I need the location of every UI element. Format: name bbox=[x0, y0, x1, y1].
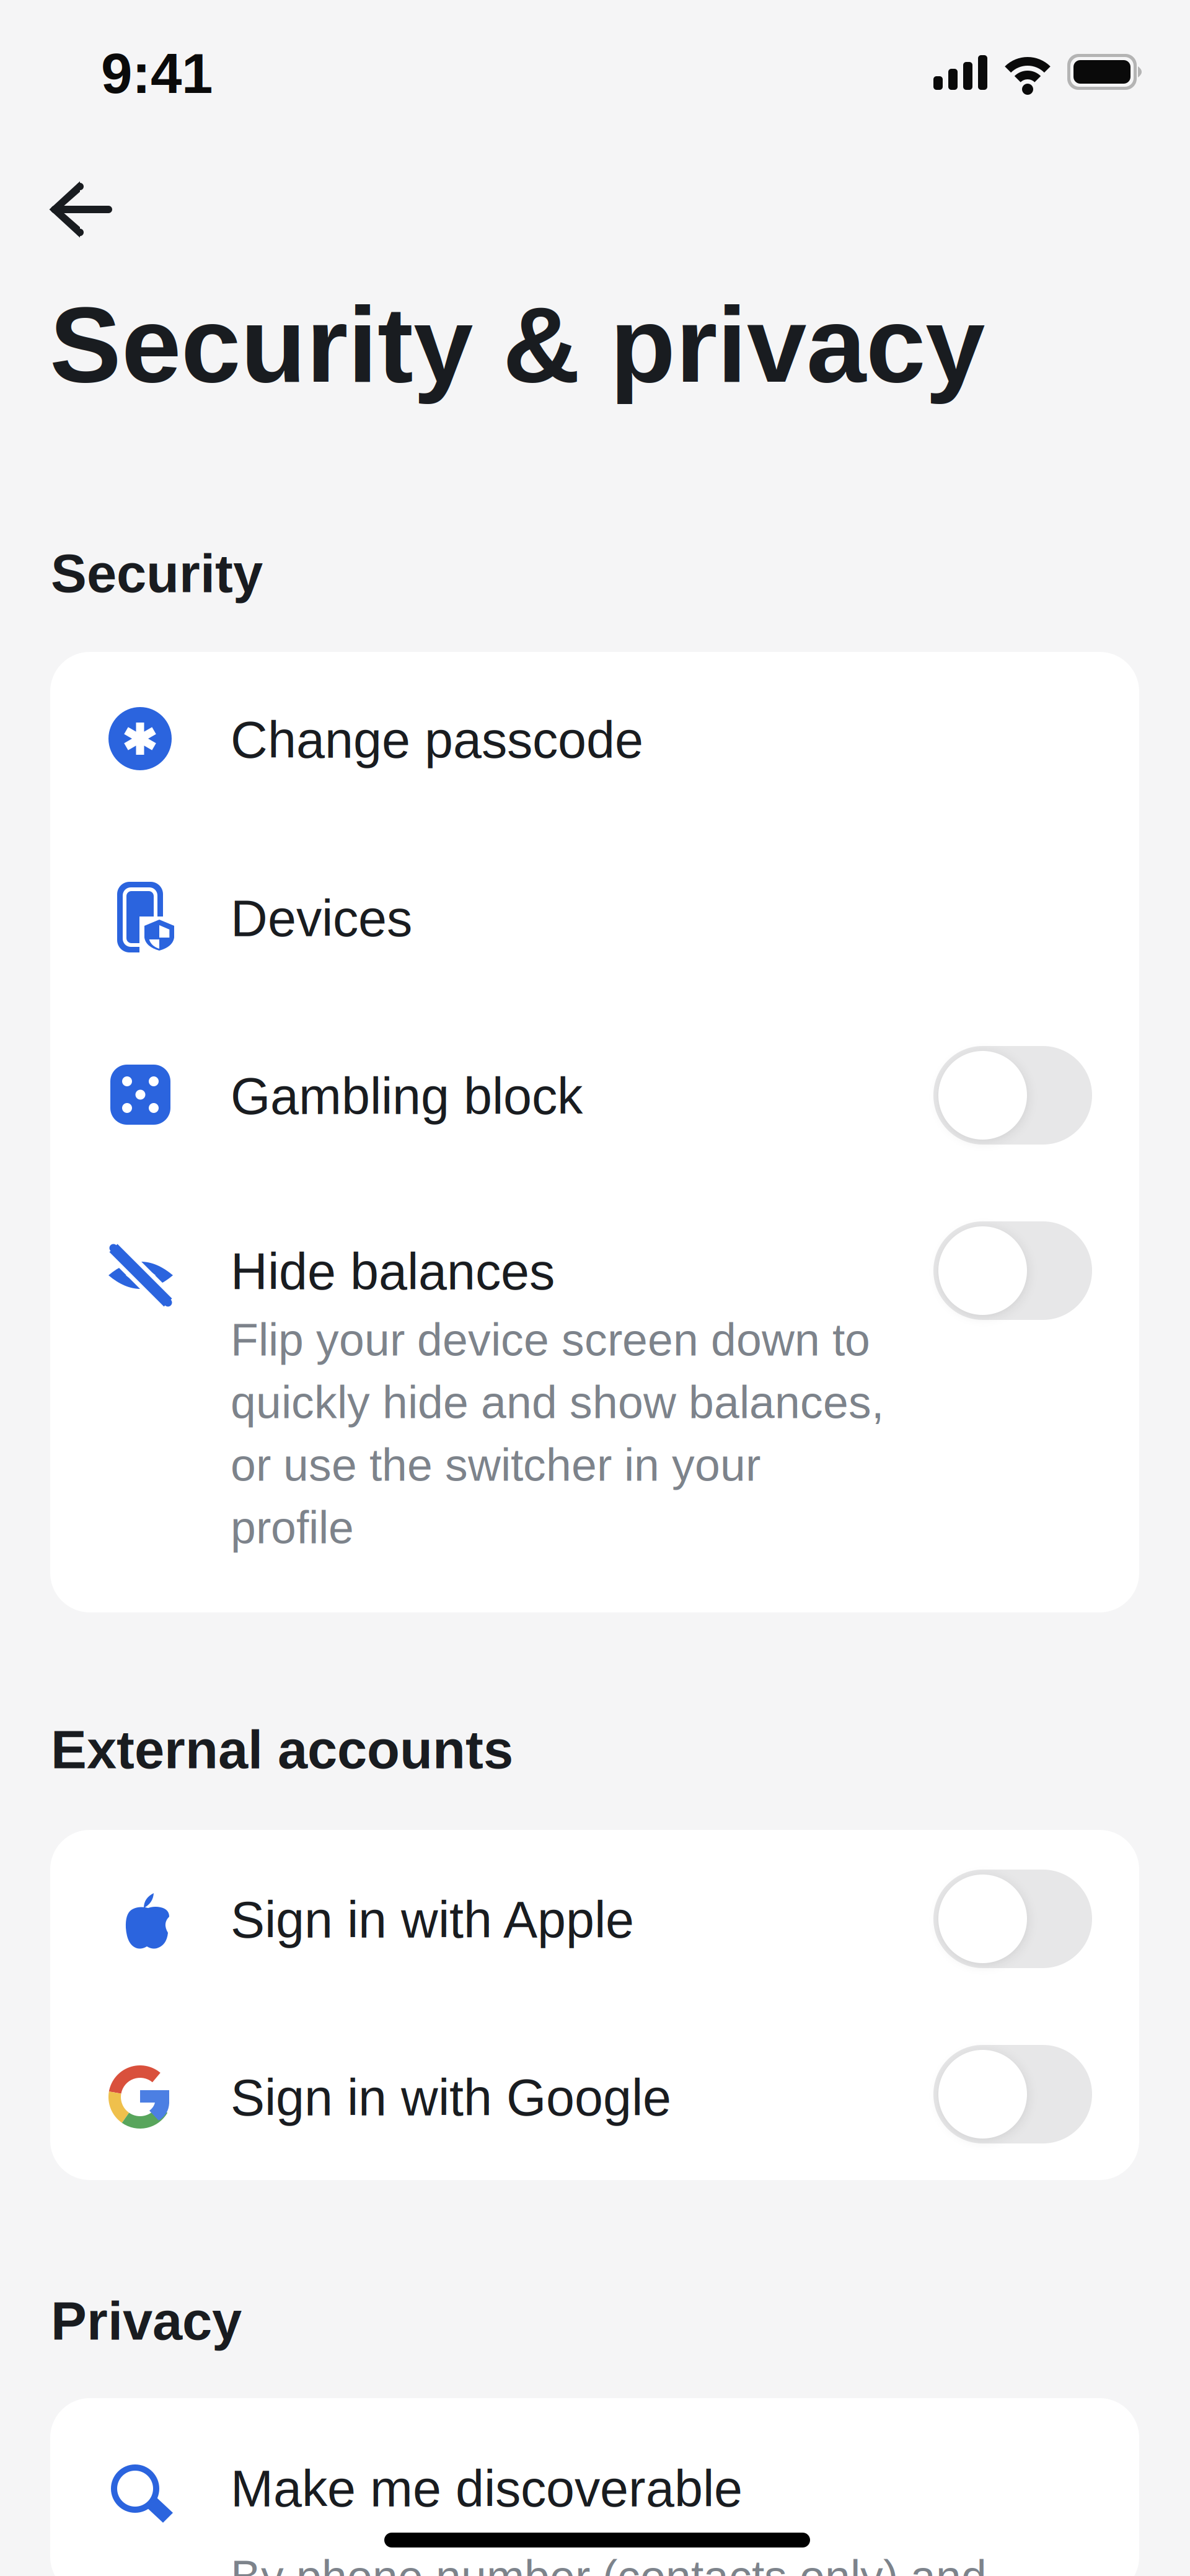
staticText: 9:41 bbox=[101, 42, 213, 105]
staticText: Sign in with Apple bbox=[231, 1891, 634, 1949]
staticText: Privacy bbox=[51, 2291, 242, 2351]
staticText: Gambling block bbox=[231, 1068, 583, 1125]
button[interactable]: Back bbox=[37, 172, 130, 253]
button[interactable]: Gambling block bbox=[50, 1008, 1139, 1183]
button[interactable]: Change passcode bbox=[50, 652, 1139, 830]
staticText: quickly hide and show balances, bbox=[231, 1377, 884, 1428]
button[interactable]: Toggle bbox=[933, 1221, 1092, 1320]
staticText: Security & privacy bbox=[50, 284, 985, 404]
button[interactable]: Make me discoverable bbox=[50, 2398, 1139, 2576]
staticText: Make me discoverable bbox=[231, 2460, 743, 2517]
staticText: Devices bbox=[231, 890, 412, 947]
button[interactable]: Sign in with Google bbox=[50, 2005, 1139, 2180]
staticText: External accounts bbox=[51, 1720, 513, 1780]
staticText: By phone number (contacts only) and bbox=[231, 2551, 987, 2576]
button[interactable]: Hide balances bbox=[50, 1183, 1139, 1612]
button[interactable]: Toggle bbox=[933, 1046, 1092, 1145]
staticText: Hide balances bbox=[231, 1243, 555, 1300]
button[interactable]: Toggle bbox=[933, 2045, 1092, 2143]
staticText: profile bbox=[231, 1502, 354, 1553]
button[interactable]: Devices bbox=[50, 830, 1139, 1008]
staticText: Flip your device screen down to bbox=[231, 1314, 870, 1365]
staticText: Sign in with Google bbox=[231, 2069, 671, 2126]
button[interactable]: Sign in with Apple bbox=[50, 1830, 1139, 2005]
button[interactable]: Toggle bbox=[933, 1870, 1092, 1968]
staticText: or use the switcher in your bbox=[231, 1440, 760, 1490]
staticText: Security bbox=[51, 543, 263, 603]
staticText: Change passcode bbox=[231, 711, 643, 769]
